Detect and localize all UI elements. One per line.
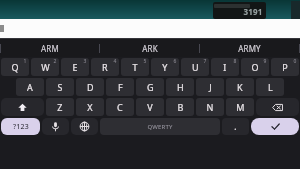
button[interactable]: Change keyboard <box>71 118 98 135</box>
staticText: O <box>251 61 259 73</box>
button[interactable]: T <box>121 58 149 76</box>
staticText: G <box>147 81 154 93</box>
button[interactable]: R <box>91 58 119 76</box>
button[interactable]: C <box>106 98 134 116</box>
button[interactable]: E <box>61 58 89 76</box>
staticText: Z <box>57 101 63 113</box>
staticText: X <box>87 101 93 113</box>
button[interactable]: P <box>271 58 299 76</box>
button[interactable]: ARM <box>1 39 99 57</box>
button[interactable]: W <box>31 58 59 76</box>
staticText: ARK <box>142 43 158 54</box>
staticText: A <box>27 81 33 93</box>
staticText: Q <box>11 61 19 73</box>
staticText: 2 <box>53 58 57 65</box>
button[interactable]: F <box>106 78 134 96</box>
staticText: 5 <box>143 58 147 65</box>
staticText: T <box>132 61 138 73</box>
staticText: H <box>177 81 184 93</box>
button[interactable]: L <box>256 78 284 96</box>
button[interactable]: Shift <box>1 98 44 116</box>
staticText: V <box>147 101 153 113</box>
staticText: ?123 <box>13 122 29 132</box>
button[interactable]: Z <box>46 98 74 116</box>
button[interactable]: I <box>211 58 239 76</box>
staticText: 1 <box>23 58 27 65</box>
button[interactable]: ARK <box>100 39 199 57</box>
staticText: F <box>118 81 123 93</box>
staticText: 4 <box>113 58 117 65</box>
button[interactable]: H <box>166 78 194 96</box>
staticText: ARMY <box>238 43 261 54</box>
staticText: U <box>192 61 199 73</box>
button[interactable]: G <box>136 78 164 96</box>
staticText: I <box>223 61 227 73</box>
staticText: 9 <box>263 58 267 65</box>
staticText: P <box>282 61 288 73</box>
staticText: N <box>206 101 214 113</box>
staticText: C <box>117 101 123 113</box>
staticText: 6 <box>173 58 177 65</box>
button[interactable]: M <box>226 98 254 116</box>
staticText: 0 <box>293 58 297 65</box>
staticText: K <box>237 81 243 93</box>
staticText: L <box>268 81 273 93</box>
staticText: J <box>209 81 212 93</box>
staticText: B <box>177 101 184 113</box>
staticText: 3191 <box>243 6 263 17</box>
button[interactable]: . <box>222 118 249 135</box>
staticText: 8 <box>233 58 237 65</box>
button[interactable]: N <box>196 98 224 116</box>
button[interactable]: D <box>76 78 104 96</box>
button[interactable]: Backspace <box>256 98 299 116</box>
staticText: 7 <box>203 58 207 65</box>
button[interactable]: Enter <box>251 118 299 135</box>
staticText: QWERTY <box>147 123 173 131</box>
staticText: Y <box>162 61 168 73</box>
staticText: M <box>236 101 245 113</box>
button[interactable]: QWERTY <box>100 118 220 135</box>
button[interactable]: ARMY <box>200 39 299 57</box>
button[interactable]: Q <box>1 58 29 76</box>
staticText: 3 <box>83 58 87 65</box>
button[interactable]: A <box>16 78 44 96</box>
staticText: D <box>87 81 94 93</box>
staticText: W <box>41 61 50 73</box>
staticText: . <box>234 121 237 132</box>
button[interactable]: Voice input <box>42 118 69 135</box>
button[interactable]: ?123 <box>1 118 40 135</box>
button[interactable]: S <box>46 78 74 96</box>
button[interactable]: X <box>76 98 104 116</box>
button[interactable]: V <box>136 98 164 116</box>
button[interactable]: J <box>196 78 224 96</box>
button[interactable]: O <box>241 58 269 76</box>
staticText: R <box>102 61 108 73</box>
button[interactable]: U <box>181 58 209 76</box>
staticText: E <box>72 61 78 73</box>
button[interactable]: K <box>226 78 254 96</box>
staticText: S <box>57 81 63 93</box>
button[interactable]: B <box>166 98 194 116</box>
staticText: ARM <box>41 43 59 54</box>
button[interactable]: Y <box>151 58 179 76</box>
